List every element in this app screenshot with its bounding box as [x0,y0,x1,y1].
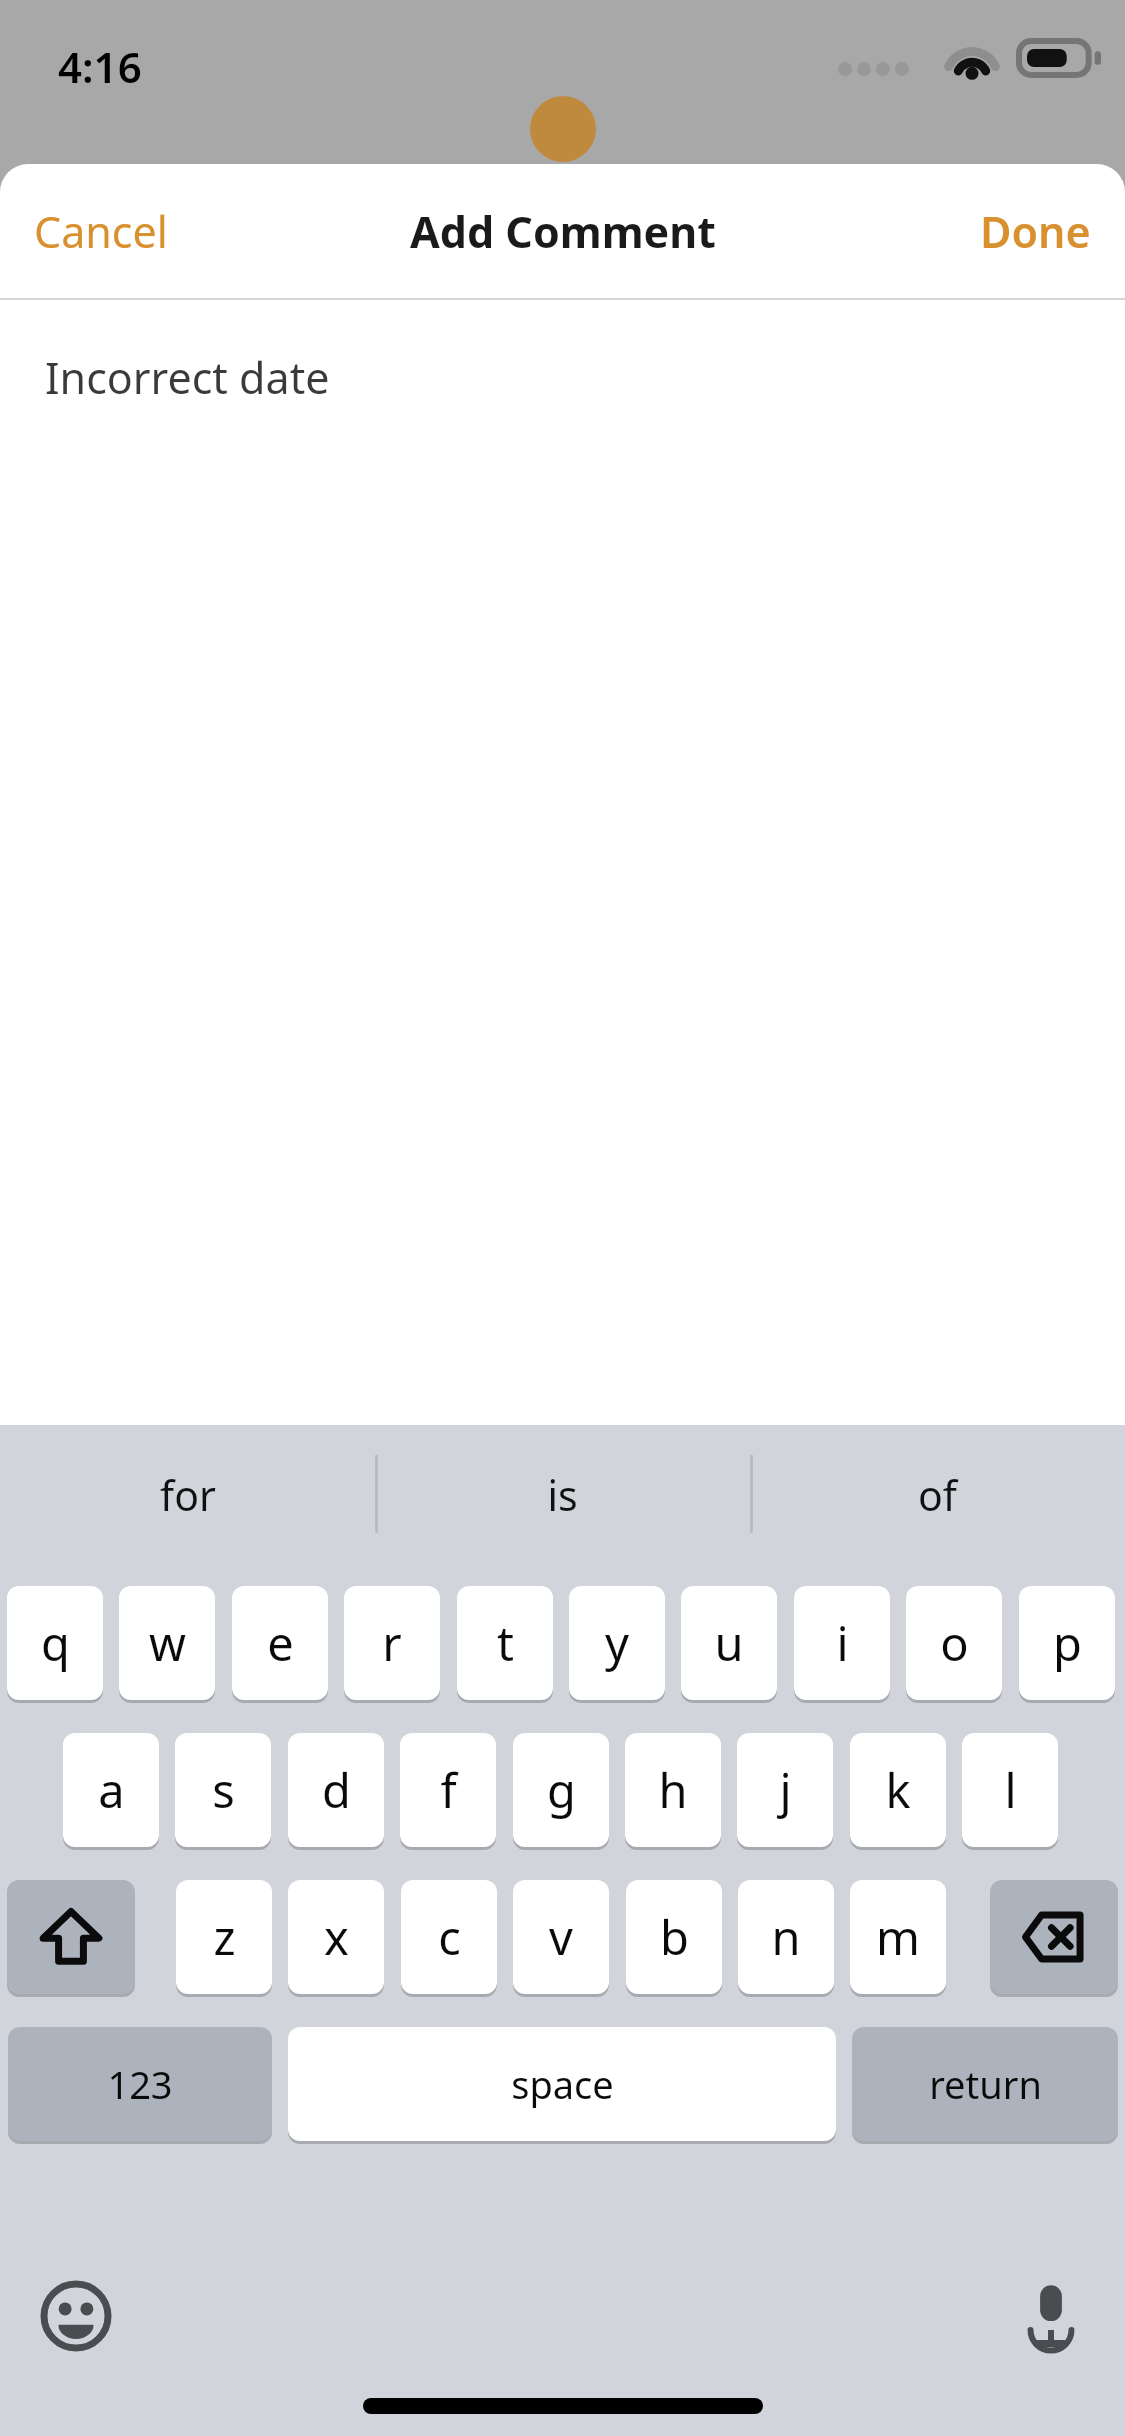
staticText: t [497,1611,514,1675]
button[interactable]: i [794,1586,890,1700]
button[interactable]: Cancel [14,188,188,275]
button[interactable]: 123 [8,2027,272,2141]
staticText: Add Comment [410,202,716,261]
button[interactable]: g [513,1733,609,1847]
button[interactable]: t [457,1586,553,1700]
staticText: k [885,1758,911,1822]
button[interactable]: Incorrect date [0,300,1125,407]
staticText: e [267,1611,294,1675]
staticText: b [660,1905,689,1969]
staticText: Incorrect date [45,348,330,407]
staticText: 123 [107,2058,173,2110]
staticText: l [1004,1758,1017,1822]
staticText: space [511,2058,614,2110]
staticText: r [382,1611,402,1675]
button[interactable]: Done [960,188,1111,275]
button[interactable]: q [7,1586,103,1700]
button[interactable]: is [375,1425,750,1565]
button[interactable]: Dictation [1005,2270,1097,2362]
staticText: Done [980,202,1091,261]
button[interactable]: d [288,1733,384,1847]
staticText: return [929,2058,1042,2110]
staticText: y [605,1611,629,1675]
button[interactable]: return [852,2027,1118,2141]
staticText: u [714,1611,744,1675]
staticText: q [41,1611,70,1675]
button[interactable]: b [626,1880,722,1994]
button[interactable]: k [850,1733,946,1847]
button[interactable]: y [569,1586,665,1700]
staticText: 4:16 [58,38,142,95]
staticText: is [547,1467,578,1523]
staticText: j [779,1758,792,1822]
button[interactable]: s [175,1733,271,1847]
button[interactable]: e [232,1586,328,1700]
staticText: a [98,1758,125,1822]
button[interactable]: z [176,1880,272,1994]
staticText: n [771,1905,801,1969]
button[interactable]: c [401,1880,497,1994]
button[interactable]: Emoji keyboard [30,2270,122,2362]
button[interactable]: Backspace [990,1880,1118,1994]
button[interactable]: r [344,1586,440,1700]
staticText: w [149,1611,186,1675]
staticText: of [918,1467,957,1523]
button[interactable]: n [738,1880,834,1994]
staticText: d [322,1758,351,1822]
staticText: c [438,1905,461,1969]
staticText: v [549,1905,573,1969]
staticText: s [212,1758,235,1822]
staticText: m [876,1905,920,1969]
button[interactable]: u [681,1586,777,1700]
button[interactable]: for [0,1425,375,1565]
button[interactable]: j [737,1733,833,1847]
button[interactable]: l [962,1733,1058,1847]
button[interactable]: Shift [7,1880,135,1994]
staticText: for [160,1467,216,1523]
button[interactable]: space [288,2027,836,2141]
button[interactable]: f [400,1733,496,1847]
staticText: o [940,1611,969,1675]
button[interactable]: of [750,1425,1125,1565]
button[interactable]: p [1019,1586,1115,1700]
staticText: z [213,1905,236,1969]
staticText: g [547,1758,576,1822]
button[interactable]: w [119,1586,215,1700]
button[interactable]: x [288,1880,384,1994]
staticText: h [658,1758,688,1822]
staticText: f [440,1758,457,1822]
button[interactable]: v [513,1880,609,1994]
button[interactable]: m [850,1880,946,1994]
button[interactable]: h [625,1733,721,1847]
button[interactable]: o [906,1586,1002,1700]
staticText: p [1053,1611,1082,1675]
staticText: Cancel [34,202,168,261]
staticText: i [836,1611,849,1675]
staticText: x [324,1905,349,1969]
button[interactable]: a [63,1733,159,1847]
